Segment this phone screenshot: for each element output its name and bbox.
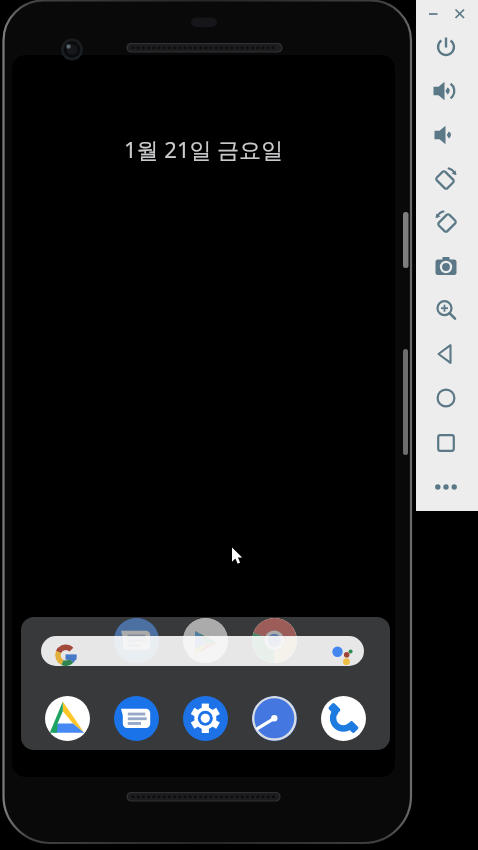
button[interactable] <box>428 161 464 197</box>
button[interactable] <box>428 336 464 372</box>
staticText: 1월 21일 금요일 <box>124 134 284 161</box>
button[interactable] <box>451 5 469 23</box>
button[interactable] <box>41 636 364 666</box>
button[interactable] <box>45 696 90 741</box>
button[interactable] <box>428 469 464 505</box>
button[interactable] <box>114 696 159 741</box>
button[interactable] <box>428 117 464 153</box>
button[interactable] <box>252 696 297 741</box>
button[interactable] <box>428 204 464 240</box>
button[interactable] <box>428 425 464 461</box>
button[interactable] <box>428 249 464 285</box>
button[interactable] <box>428 292 464 328</box>
button[interactable] <box>183 696 228 741</box>
button[interactable] <box>424 5 442 23</box>
button[interactable] <box>321 696 366 741</box>
button[interactable] <box>252 618 297 663</box>
button[interactable] <box>183 618 228 663</box>
button[interactable] <box>114 618 159 663</box>
button[interactable] <box>428 29 464 65</box>
button[interactable] <box>428 380 464 416</box>
button[interactable] <box>428 73 464 109</box>
